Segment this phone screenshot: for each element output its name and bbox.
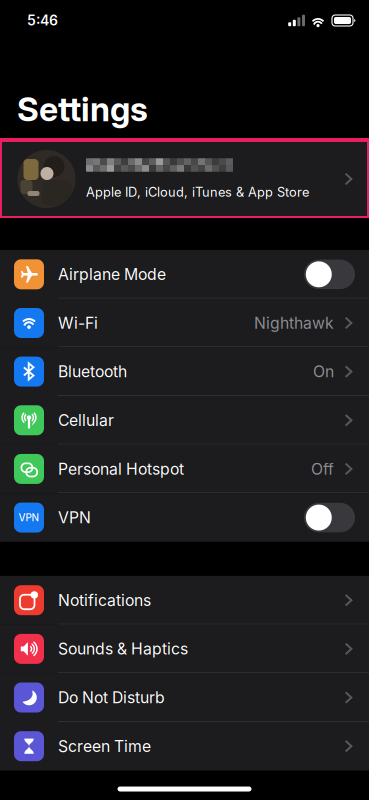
staticText: Notifications [58,591,151,610]
staticText: Off [311,459,334,478]
staticText: Apple ID, iCloud, iTunes & App Store [86,184,309,200]
staticText: Nighthawk [254,313,334,332]
button[interactable]: Apple ID, iCloud, iTunes & App Store [0,140,369,218]
button[interactable]: Sounds & Haptics [0,624,369,673]
button[interactable]: VPN [0,493,369,542]
staticText: VPN [58,508,91,527]
button[interactable]: Cellular [0,396,369,444]
staticText: Bluetooth [58,362,127,381]
staticText: Airplane Mode [58,265,166,284]
staticText: Cellular [58,411,114,430]
staticText: Wi-Fi [58,313,98,332]
staticText: Personal Hotspot [58,459,184,478]
staticText: VPN [18,511,39,524]
staticText: 5:46 [27,12,58,29]
staticText: Settings [17,89,148,129]
button[interactable]: Wi-Fi [0,299,369,347]
button[interactable]: Screen Time [0,722,369,770]
staticText: Do Not Disturb [58,688,165,707]
button[interactable]: Personal Hotspot [0,445,369,493]
button[interactable]: Notifications [0,576,369,624]
staticText: Sounds & Haptics [58,639,188,658]
button[interactable]: Bluetooth [0,347,369,396]
button[interactable]: Do Not Disturb [0,673,369,722]
staticText: On [313,362,334,381]
button[interactable]: Airplane Mode [0,250,369,299]
staticText: Screen Time [58,737,151,756]
